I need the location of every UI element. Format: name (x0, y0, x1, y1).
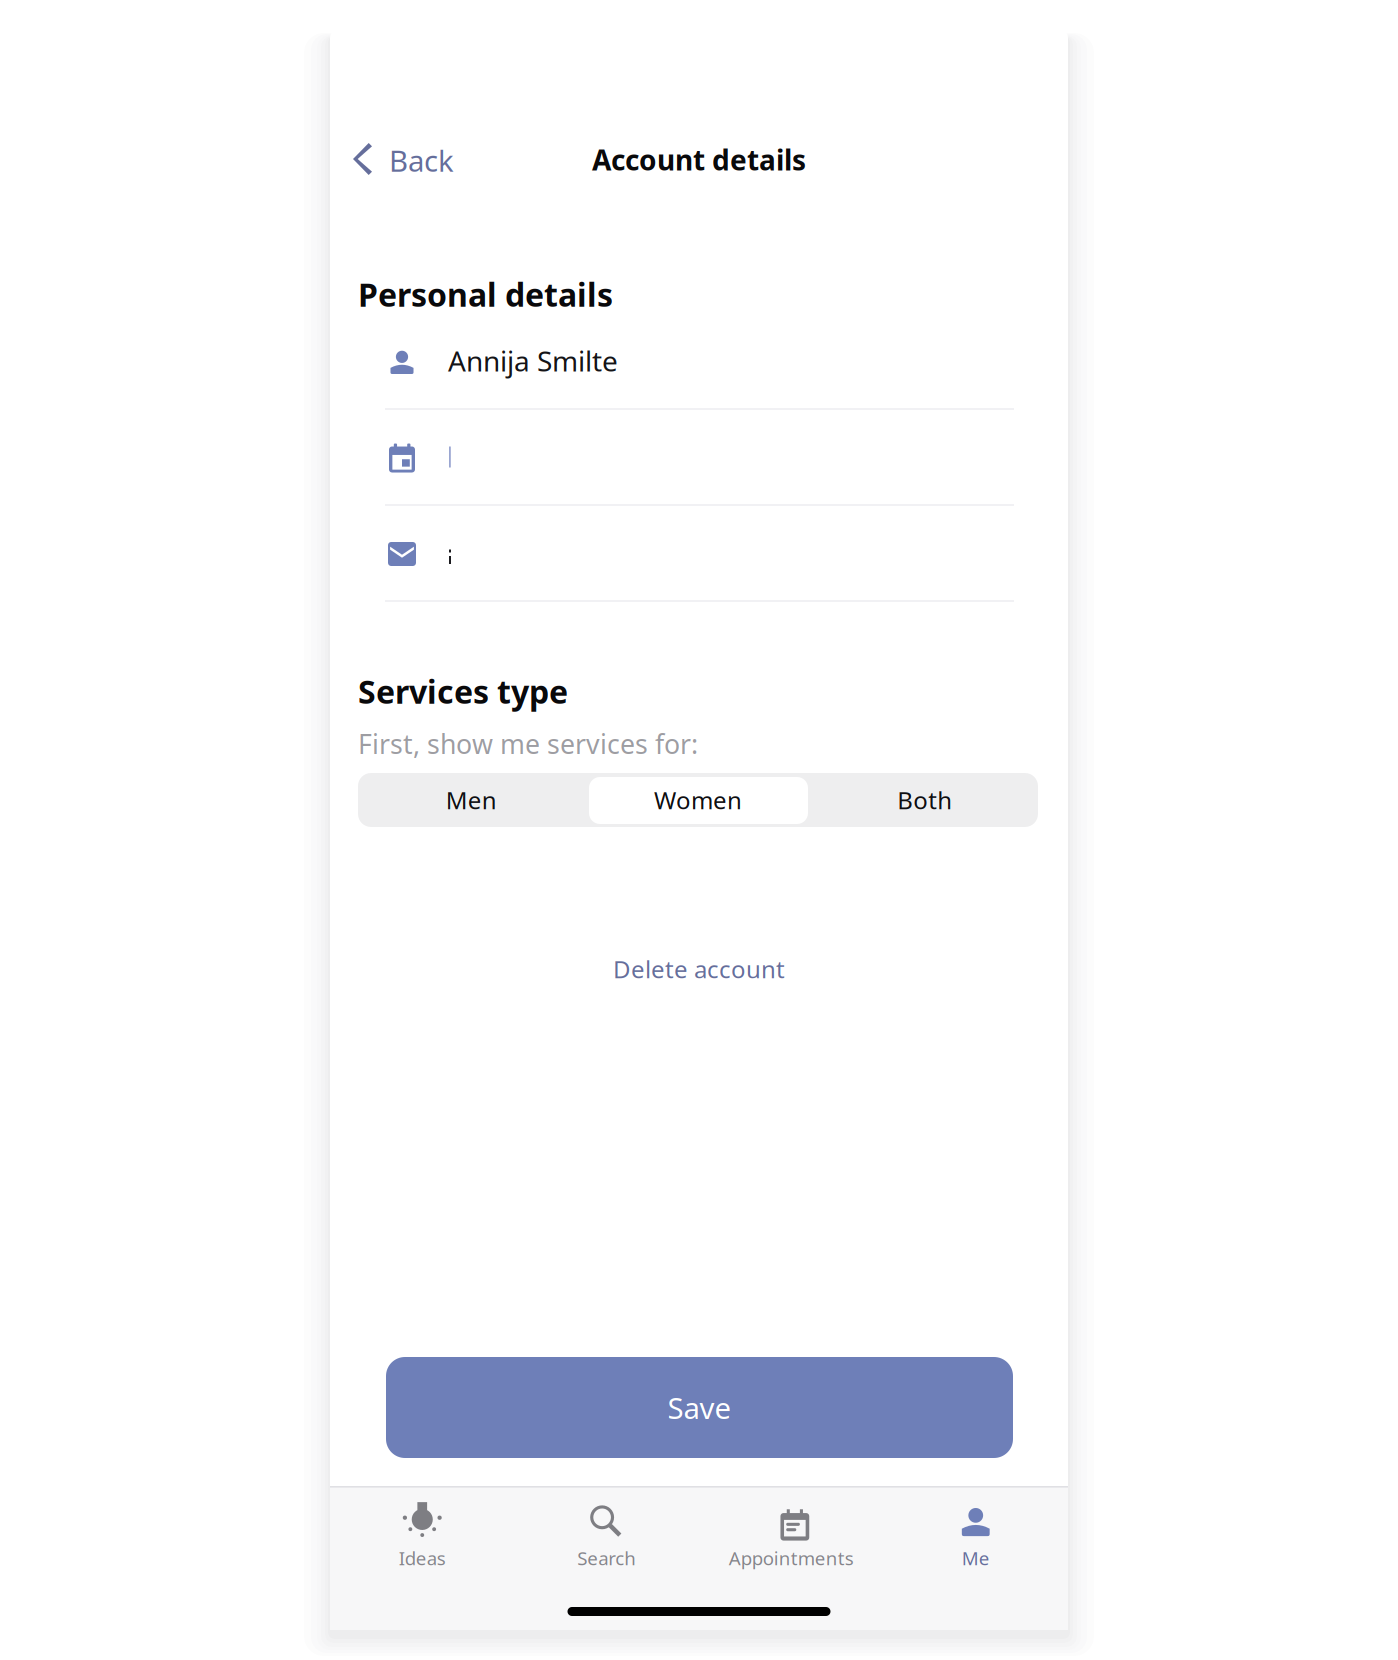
button[interactable]: Women (585, 773, 811, 827)
button[interactable] (385, 504, 1014, 600)
button[interactable]: Annija Smilte (385, 312, 1014, 408)
staticText: Personal details (358, 273, 613, 315)
button[interactable]: Delete account (529, 942, 869, 996)
button[interactable]: Ideas (330, 1496, 514, 1576)
button[interactable]: Both (811, 773, 1038, 827)
staticText: Annija Smilte (448, 342, 618, 379)
button[interactable] (385, 408, 1014, 504)
button[interactable]: Search (514, 1496, 699, 1576)
staticText: Delete account (613, 953, 785, 985)
button[interactable]: Back (347, 127, 465, 185)
staticText: Women (654, 784, 742, 816)
button[interactable]: Me (883, 1496, 1068, 1576)
staticText: First, show me services for: (358, 726, 698, 761)
staticText: Account details (592, 141, 806, 178)
button[interactable]: Men (358, 773, 585, 827)
staticText: Men (446, 784, 497, 816)
button[interactable]: Save (386, 1357, 1013, 1458)
staticText: Me (962, 1546, 990, 1570)
button[interactable]: Appointments (699, 1496, 883, 1576)
staticText: Appointments (729, 1546, 854, 1570)
staticText: Save (667, 1388, 731, 1427)
staticText: Both (897, 784, 952, 816)
staticText: Services type (358, 670, 568, 712)
staticText: Back (389, 141, 454, 180)
staticText: Ideas (399, 1546, 446, 1570)
staticText: Search (577, 1546, 636, 1570)
